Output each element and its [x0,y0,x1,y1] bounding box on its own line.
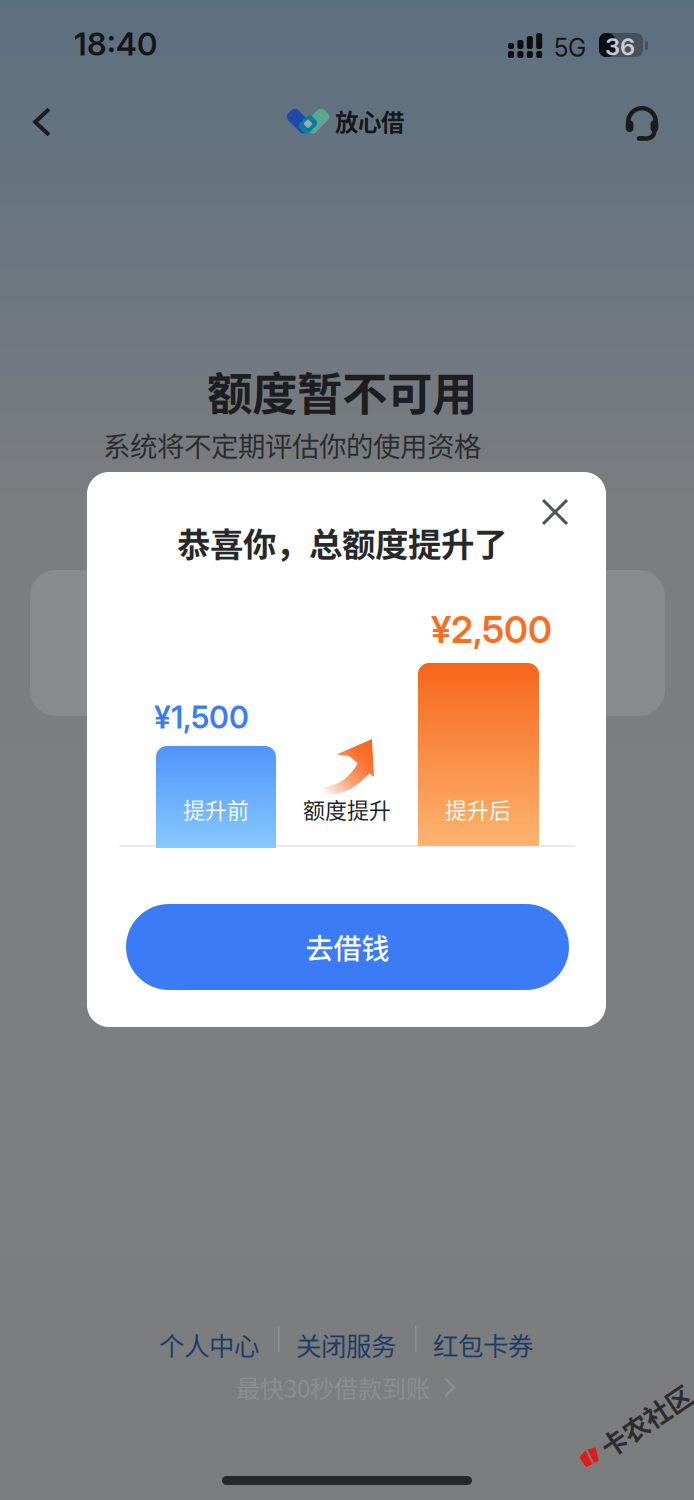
staticText: ¥1,500 [154,699,249,736]
staticText: 恭喜你，总额度提升了 [177,518,507,566]
staticText: 去借钱 [305,927,389,967]
staticText: 36 [605,32,635,61]
staticText: 额度提升 [303,793,391,825]
button[interactable]: Customer service [619,99,665,145]
staticText: 提升后 [445,793,511,825]
button[interactable]: 红包卡券 [423,1322,543,1367]
staticText: 系统将不定期评估你的使用资格 [103,425,481,465]
staticText: 卡农社区 [596,1408,694,1446]
staticText: 最快30秒借款到账 [236,1370,430,1405]
staticText: 额度暂不可用 [207,358,477,424]
staticText: 红包卡券 [433,1326,533,1363]
staticText: 关闭服务 [296,1326,396,1363]
staticText: 18:40 [74,25,157,63]
button[interactable]: Close [529,486,581,538]
staticText: 5G [554,33,586,63]
button[interactable]: 个人中心 [149,1322,269,1367]
staticText: 放心借 [335,104,404,138]
staticText: 个人中心 [159,1326,259,1363]
button[interactable]: 关闭服务 [286,1322,406,1367]
button[interactable]: 去借钱 [126,904,569,990]
staticText: 提升前 [183,793,249,825]
button[interactable]: Back [20,99,66,145]
button[interactable]: 最快30秒借款到账 [236,1366,457,1409]
staticText: ¥2,500 [431,607,552,652]
